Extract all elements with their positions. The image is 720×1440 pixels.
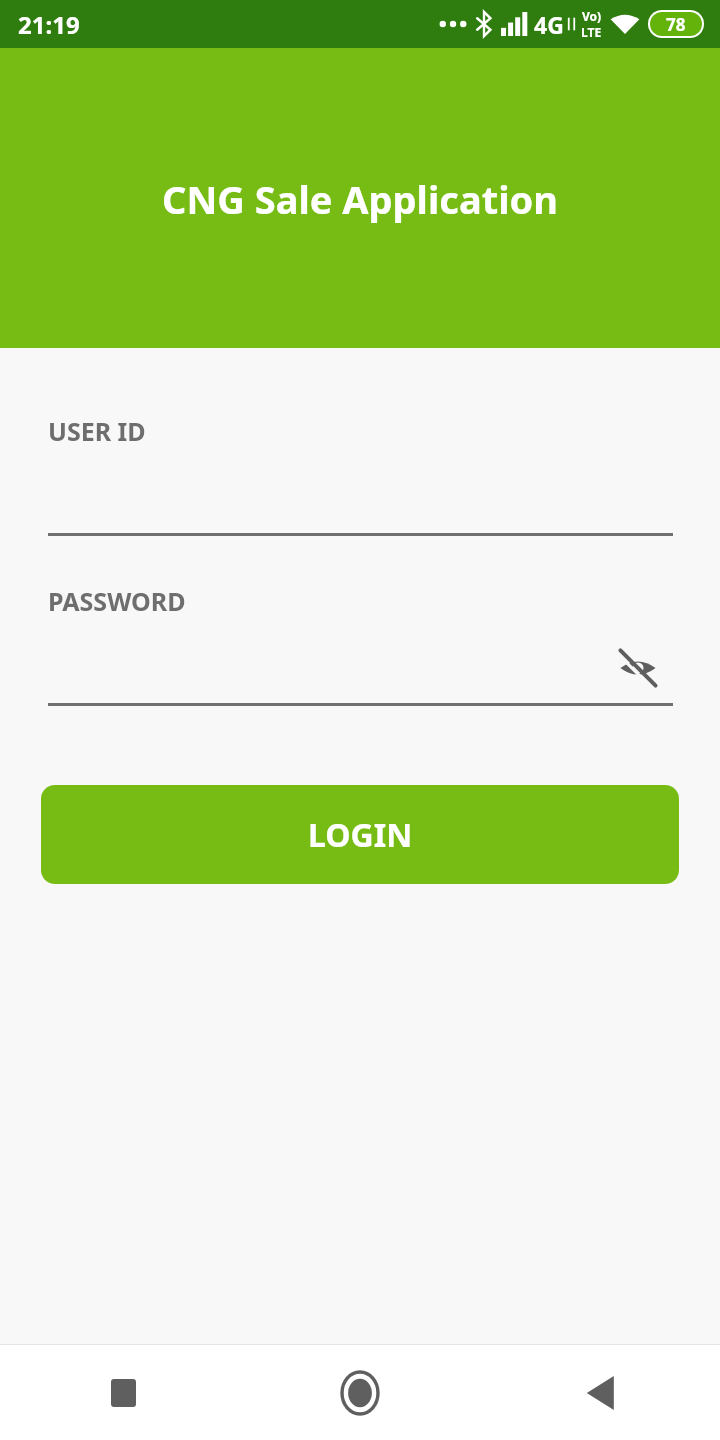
button[interactable]: LOGIN	[41, 785, 679, 884]
button[interactable]: Show password	[48, 618, 673, 706]
staticText: LTE	[581, 24, 602, 40]
staticText: USER ID	[48, 414, 146, 448]
button[interactable]: Home	[240, 1345, 480, 1440]
button[interactable]: Back	[480, 1345, 720, 1440]
staticText: CNG Sale Application	[162, 173, 558, 225]
staticText: Vo)	[582, 8, 602, 24]
staticText: LOGIN	[308, 813, 413, 857]
staticText: PASSWORD	[48, 584, 186, 618]
staticText: 21:19	[18, 8, 80, 41]
staticText: 78	[666, 13, 686, 36]
button[interactable]: Recent apps	[0, 1345, 240, 1440]
button[interactable]	[48, 448, 673, 536]
staticText: 4G	[534, 9, 564, 40]
button[interactable]: Show password	[612, 642, 664, 694]
